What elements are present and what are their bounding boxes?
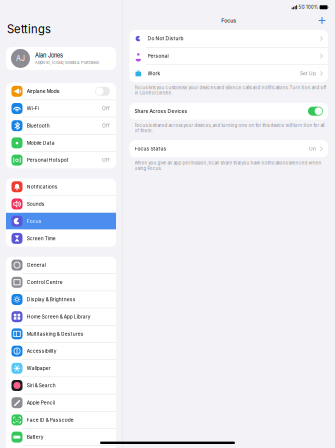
button[interactable]: Display & Brightness <box>6 291 116 308</box>
button[interactable]: Screen Time <box>6 230 116 247</box>
staticText: Personal Hotspot <box>27 157 69 163</box>
staticText: Multitasking & Gestures <box>27 331 84 337</box>
staticText: Focus lets you customise your devices an… <box>134 85 326 96</box>
staticText: Alan Jones <box>35 52 63 59</box>
staticText: Settings <box>7 22 51 36</box>
staticText: Notifications <box>27 184 58 190</box>
button[interactable]: Home Screen & App Library <box>6 308 116 325</box>
button[interactable]: Control Centre <box>6 274 116 291</box>
button[interactable]: Apple Pencil <box>6 394 116 411</box>
button[interactable]: Do Not Disturb <box>129 30 328 47</box>
staticText: Share Across Devices <box>134 108 187 114</box>
staticText: Set Up <box>300 71 316 76</box>
staticText: Focus <box>27 218 42 224</box>
staticText: Off <box>102 105 110 111</box>
staticText: Focus is shared across your devices, and… <box>134 123 324 133</box>
staticText: Sounds <box>27 201 45 207</box>
button[interactable]: Sounds <box>6 196 116 212</box>
button[interactable]: Airplane Mode <box>6 83 116 100</box>
staticText: Do Not Disturb <box>148 36 184 41</box>
button[interactable]: AJ <box>6 47 116 70</box>
button[interactable]: Focus <box>6 213 116 229</box>
button[interactable]: General <box>6 257 116 273</box>
staticText: AJ <box>16 54 25 63</box>
button[interactable]: Personal <box>129 47 328 64</box>
staticText: General <box>27 262 46 268</box>
staticText: Off <box>102 123 110 129</box>
staticText: Mobile Data <box>27 140 55 146</box>
button[interactable]: Mobile Data <box>6 134 116 151</box>
staticText: Wallpaper <box>27 365 51 371</box>
button[interactable]: Share Across Devices <box>129 103 328 120</box>
staticText: Screen Time <box>27 235 56 241</box>
staticText: Apple ID, iCloud, Media & Purchases <box>35 60 99 65</box>
button[interactable]: Siri & Search <box>6 377 116 394</box>
staticText: Face ID & Passcode <box>27 417 74 423</box>
staticText: Off <box>102 157 110 163</box>
staticText: Wi-Fi <box>27 105 39 111</box>
staticText: 5G <box>299 5 305 10</box>
staticText: Focus Status <box>134 146 166 152</box>
button[interactable]: Wallpaper <box>6 360 116 377</box>
button[interactable]: Battery <box>6 429 116 445</box>
button[interactable]: Notifications <box>6 178 116 195</box>
staticText: Battery <box>27 434 44 440</box>
staticText: Work <box>148 71 161 76</box>
button[interactable]: Bluetooth <box>6 117 116 134</box>
staticText: 100% <box>306 5 318 10</box>
button[interactable]: Personal Hotspot <box>6 152 116 168</box>
staticText: Personal <box>148 53 169 59</box>
staticText: Control Centre <box>27 279 63 285</box>
staticText: Home Screen & App Library <box>27 314 91 320</box>
button[interactable]: Focus Status <box>129 140 328 157</box>
button[interactable]: Multitasking & Gestures <box>6 325 116 342</box>
button[interactable]: Face ID & Passcode <box>6 411 116 428</box>
staticText: Accessibility <box>27 348 57 354</box>
button[interactable]: Wi-Fi <box>6 100 116 117</box>
staticText: Apple Pencil <box>27 400 55 406</box>
staticText: Focus <box>221 17 236 24</box>
button[interactable]: Add Focus <box>318 16 326 24</box>
staticText: Bluetooth <box>27 123 50 129</box>
staticText: On <box>309 146 316 152</box>
button[interactable]: Accessibility <box>6 343 116 359</box>
staticText: When you give an app permission, it can … <box>134 160 321 171</box>
staticText: Siri & Search <box>27 382 56 388</box>
staticText: Airplane Mode <box>27 88 60 94</box>
button[interactable]: Work <box>129 65 328 82</box>
staticText: Display & Brightness <box>27 296 76 302</box>
